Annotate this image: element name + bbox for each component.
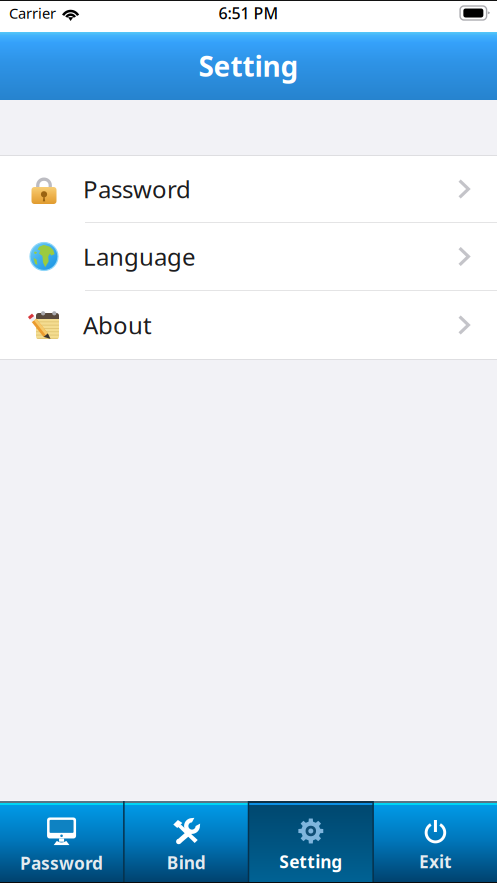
staticText: Setting bbox=[198, 47, 298, 85]
button[interactable]: Exit bbox=[374, 801, 497, 882]
staticText: Setting bbox=[279, 850, 342, 873]
staticText: Exit bbox=[419, 850, 452, 873]
button[interactable]: About bbox=[0, 291, 497, 359]
button[interactable]: Password bbox=[0, 156, 497, 223]
staticText: Password bbox=[20, 851, 103, 874]
button[interactable]: Bind bbox=[125, 801, 248, 882]
button[interactable]: Setting bbox=[249, 801, 372, 882]
staticText: Language bbox=[83, 241, 196, 272]
staticText: Carrier bbox=[9, 3, 56, 23]
staticText: 6:51 PM bbox=[218, 2, 278, 24]
staticText: About bbox=[83, 309, 152, 341]
staticText: Password bbox=[83, 173, 191, 205]
button[interactable]: Password bbox=[0, 801, 123, 882]
button[interactable]: Language bbox=[0, 223, 497, 291]
staticText: Bind bbox=[167, 851, 206, 874]
